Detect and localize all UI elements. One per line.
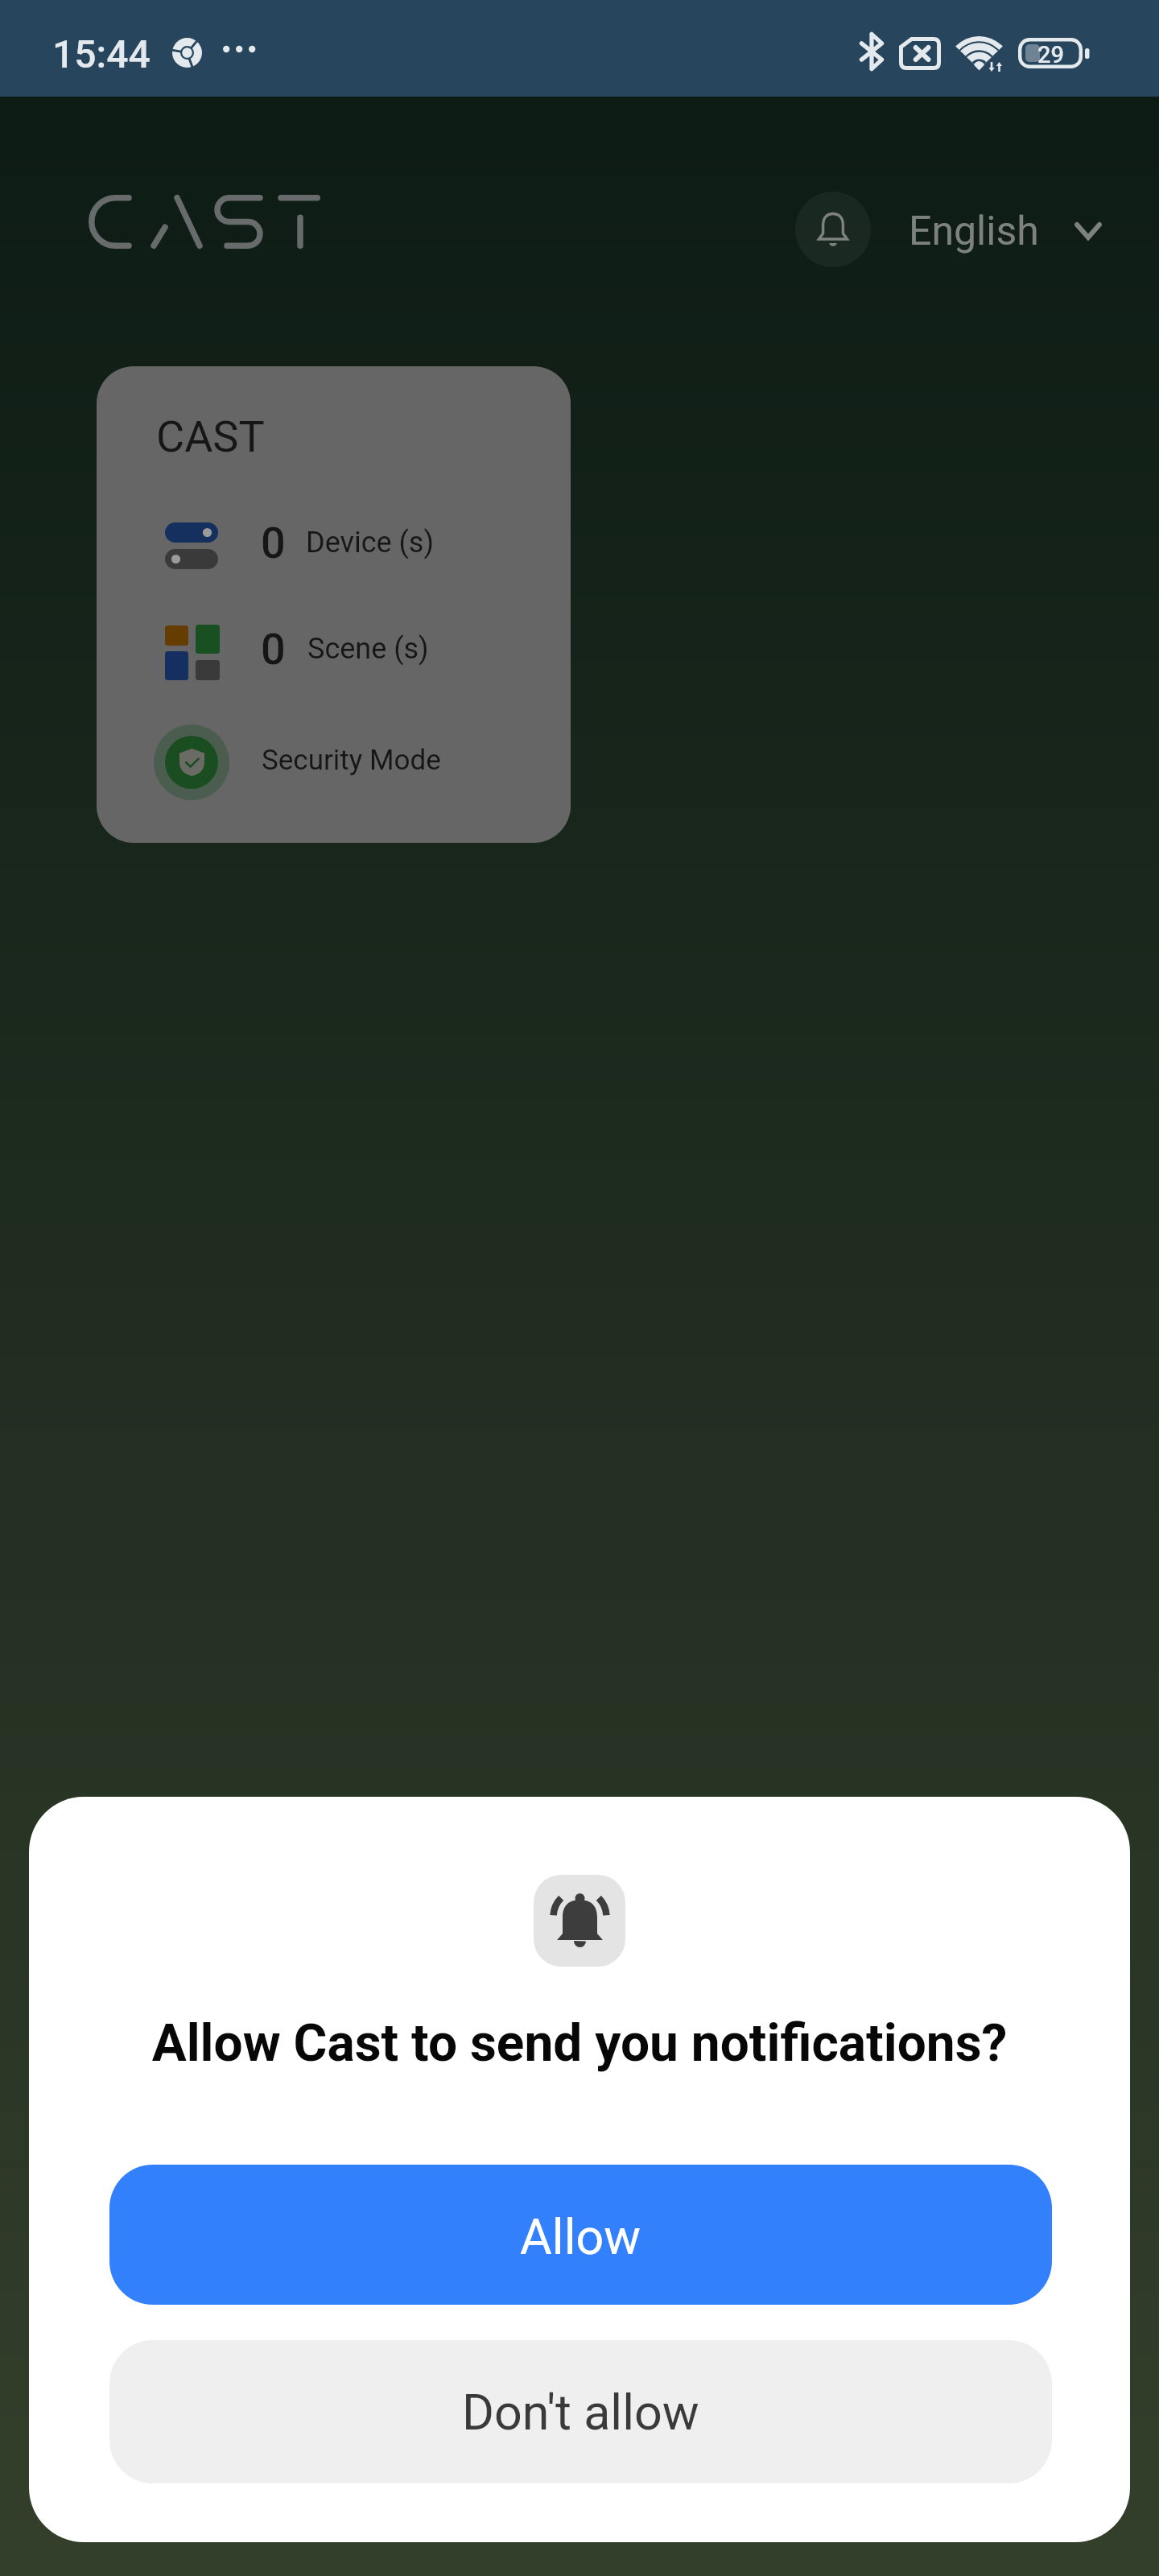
staticText: Security Mode [262,744,441,777]
button[interactable]: Don't allow [109,2340,1052,2483]
button[interactable]: 0 [97,510,571,582]
staticText: Allow [520,2208,641,2265]
button[interactable]: Notifications [795,192,871,267]
staticText: 0 [261,624,286,675]
staticText: CAST [156,411,265,462]
staticText: English [909,208,1039,255]
button[interactable]: 0 [97,616,571,688]
staticText: 0 [261,518,286,568]
staticText: Allow Cast to send you notifications? [29,2013,1130,2074]
button[interactable]: Security Mode [97,714,571,803]
staticText: 15:44 [52,31,151,76]
staticText: Don't allow [462,2384,699,2441]
button[interactable]: CAST [97,366,571,843]
button[interactable]: Allow [109,2165,1052,2305]
button[interactable]: English [909,193,1102,269]
staticText: Device (s) [306,526,434,559]
staticText: 29 [1037,41,1064,68]
staticText: Scene (s) [307,632,429,666]
